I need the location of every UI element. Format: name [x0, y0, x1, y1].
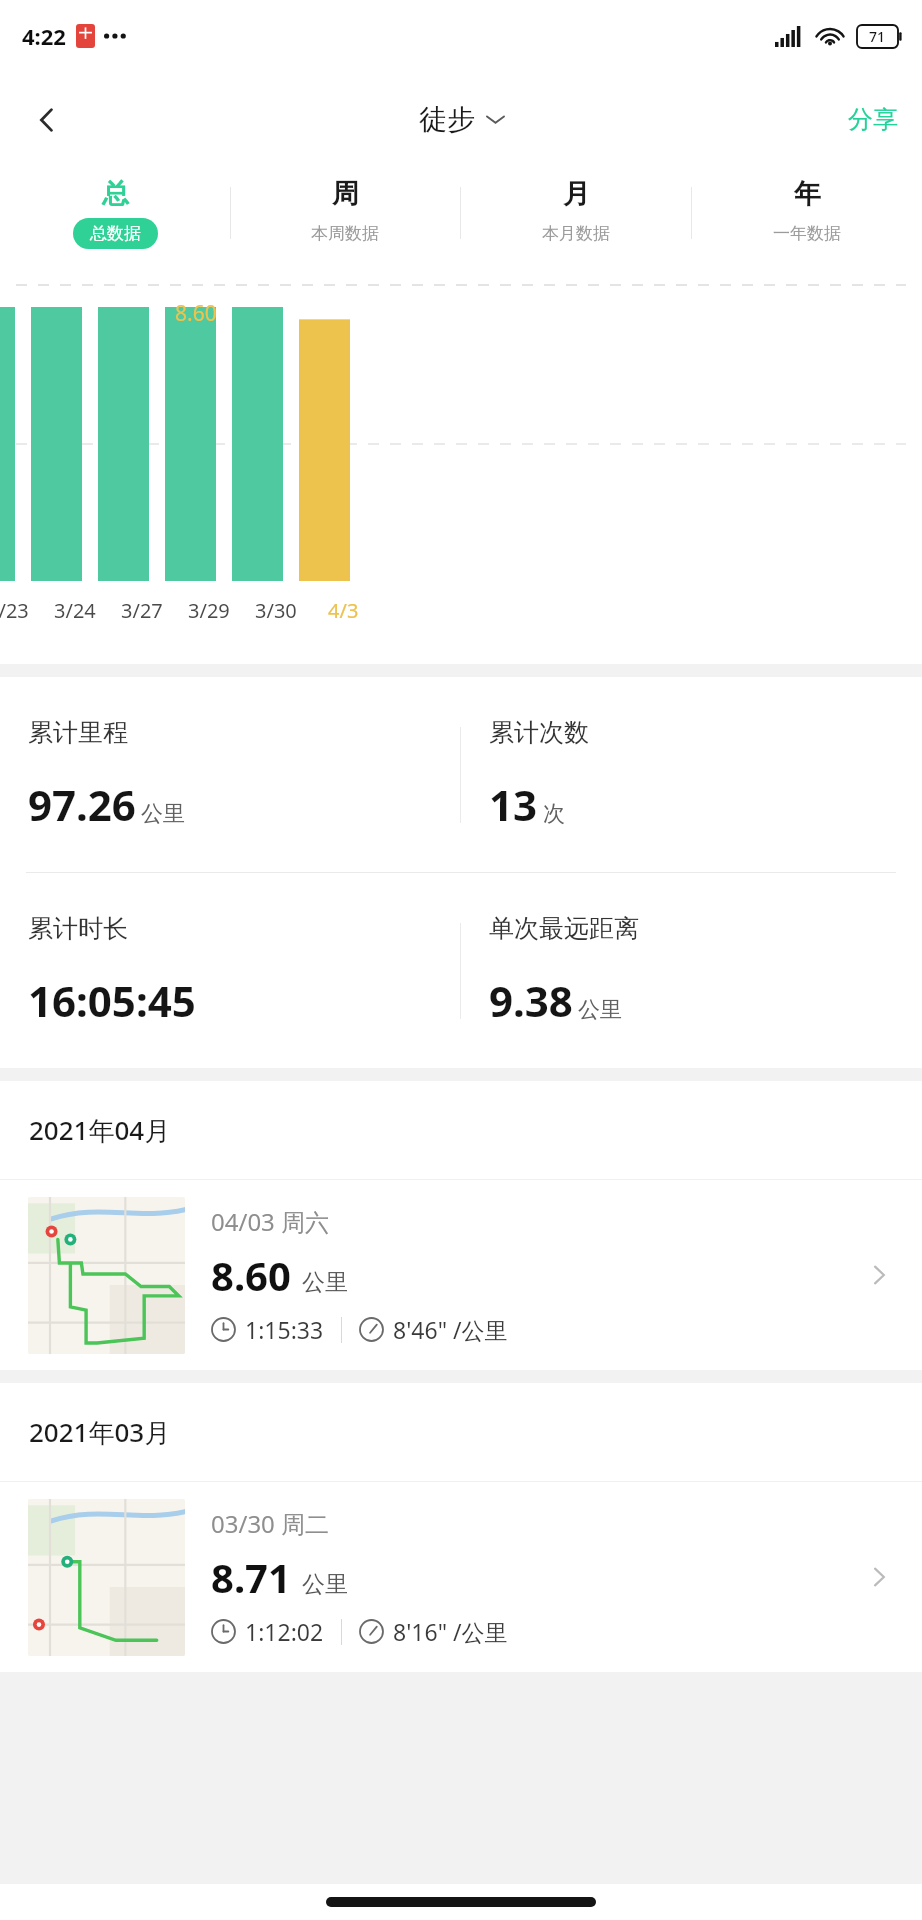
- button[interactable]: 周: [230, 167, 460, 259]
- staticText: 03/30 周二: [211, 1507, 330, 1540]
- staticText: 年: [794, 177, 821, 211]
- staticText: 8.60: [211, 1248, 291, 1302]
- staticText: 累计里程: [28, 717, 128, 748]
- button[interactable]: 04/03 周六: [0, 1180, 922, 1370]
- staticText: 次: [543, 800, 565, 828]
- button[interactable]: 返回: [12, 85, 82, 155]
- other: 详情: [864, 1562, 894, 1592]
- staticText: 2021年03月: [29, 1414, 171, 1450]
- staticText: 13: [489, 776, 538, 833]
- staticText: 8.60: [175, 299, 217, 328]
- staticText: 3/23: [0, 597, 29, 624]
- staticText: 2021年04月: [29, 1112, 171, 1148]
- staticText: 8'46" /公里: [393, 1314, 508, 1345]
- staticText: 97.26: [28, 776, 136, 833]
- staticText: 3/30: [255, 597, 297, 624]
- staticText: 公里: [141, 800, 185, 828]
- staticText: 总: [102, 177, 129, 211]
- staticText: 3/29: [188, 597, 230, 624]
- staticText: 本月数据: [542, 223, 610, 244]
- staticText: 4/3: [328, 597, 359, 624]
- other: 详情: [864, 1260, 894, 1290]
- staticText: 8.71: [211, 1550, 291, 1604]
- staticText: 累计次数: [489, 717, 589, 748]
- button[interactable]: 徒步: [413, 96, 510, 143]
- staticText: 累计时长: [28, 913, 128, 944]
- button[interactable]: 总: [0, 167, 230, 259]
- staticText: 4:22: [22, 21, 66, 51]
- staticText: 分享: [848, 104, 898, 135]
- button[interactable]: 月: [460, 167, 691, 259]
- staticText: 71: [869, 27, 886, 46]
- staticText: 1:15:33: [245, 1314, 324, 1345]
- staticText: 单次最远距离: [489, 913, 639, 944]
- staticText: 3/27: [121, 597, 163, 624]
- staticText: 总数据: [90, 223, 141, 244]
- staticText: 公里: [578, 996, 622, 1024]
- staticText: 月: [563, 177, 590, 211]
- staticText: 周: [332, 177, 359, 211]
- button[interactable]: 03/30 周二: [0, 1482, 922, 1672]
- staticText: 公里: [302, 1268, 348, 1297]
- staticText: 公里: [302, 1570, 348, 1599]
- staticText: 8'16" /公里: [393, 1616, 508, 1647]
- staticText: 16:05:45: [28, 972, 196, 1029]
- staticText: 本周数据: [311, 223, 379, 244]
- staticText: 04/03 周六: [211, 1205, 330, 1238]
- staticText: 1:12:02: [245, 1616, 324, 1647]
- staticText: 一年数据: [773, 223, 841, 244]
- button[interactable]: 分享: [838, 92, 908, 147]
- staticText: 徒步: [419, 102, 475, 137]
- staticText: 9.38: [489, 972, 573, 1029]
- staticText: 3/24: [54, 597, 96, 624]
- button[interactable]: 年: [691, 167, 922, 259]
